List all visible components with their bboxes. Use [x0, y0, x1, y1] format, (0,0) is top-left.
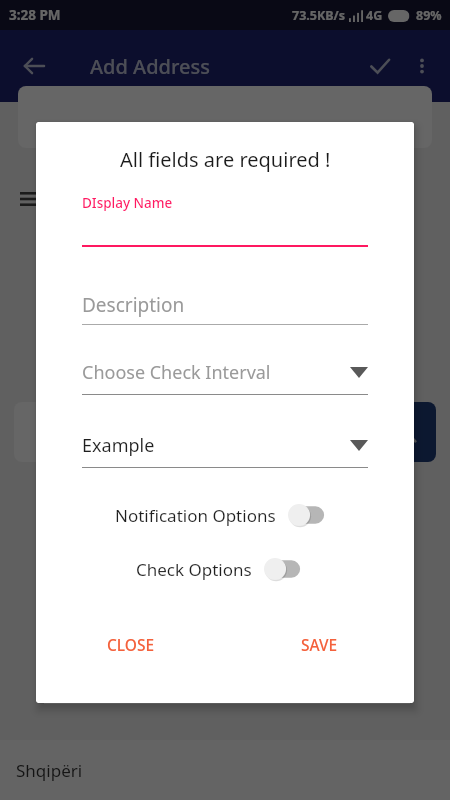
button[interactable]: Example [82, 433, 368, 468]
staticText: Add Address [90, 53, 210, 80]
button[interactable]: Toggle [264, 557, 306, 581]
button[interactable]: Back [12, 44, 56, 88]
button[interactable]: More options [402, 46, 442, 86]
staticText: 4G [366, 7, 383, 24]
button[interactable]: Check Options [36, 549, 414, 589]
staticText: Description [82, 292, 185, 318]
button[interactable]: Notification Options [36, 495, 414, 535]
staticText: 73.5KB/s [292, 7, 346, 24]
button[interactable]: Confirm [358, 44, 402, 88]
staticText: Notification Options [115, 504, 276, 527]
staticText: Example [82, 433, 350, 458]
staticText: SAVE [301, 634, 338, 655]
button[interactable]: Choose Check Interval [82, 360, 368, 395]
staticText: Shqipëri [16, 759, 83, 782]
button[interactable]: DIsplay Name [82, 194, 368, 247]
button[interactable]: SAVE [225, 622, 414, 666]
staticText: DIsplay Name [82, 194, 173, 212]
button[interactable]: Description [82, 292, 368, 325]
button[interactable]: Menu [20, 186, 46, 212]
button[interactable]: Toggle [288, 503, 330, 527]
staticText: Choose Check Interval [82, 360, 350, 385]
staticText: CLOSE [107, 634, 155, 655]
staticText: 89% [416, 7, 442, 24]
staticText: 3:28 PM [9, 6, 61, 24]
button[interactable]: Shqipëri [0, 740, 450, 800]
button[interactable]: Search [376, 402, 436, 462]
button[interactable]: CLOSE [36, 622, 225, 666]
staticText: All fields are required ! [120, 146, 331, 173]
staticText: Check Options [136, 558, 252, 581]
